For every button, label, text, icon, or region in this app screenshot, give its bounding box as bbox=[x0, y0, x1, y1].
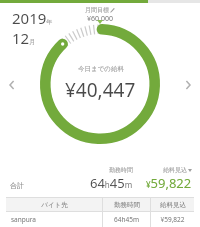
staticText: ¥59,822 bbox=[146, 174, 192, 192]
staticText: 勤務時間 bbox=[114, 201, 140, 209]
staticText: 月間目標 bbox=[85, 6, 109, 14]
staticText: sanpura bbox=[11, 215, 36, 224]
button[interactable]: Next month bbox=[177, 74, 199, 96]
staticText: バイト先 bbox=[41, 201, 68, 209]
staticText: 12月 bbox=[12, 28, 36, 48]
staticText: ¥60,000 bbox=[87, 14, 113, 24]
staticText: ¥59,822 bbox=[160, 215, 185, 224]
button[interactable]: 今日までの給料 bbox=[40, 24, 160, 144]
button[interactable]: 月間目標 bbox=[85, 6, 115, 24]
staticText: 64h45m bbox=[114, 215, 139, 224]
button[interactable]: Previous month bbox=[1, 74, 23, 96]
button[interactable]: 合計 bbox=[10, 166, 192, 192]
staticText: 64h45m bbox=[90, 174, 133, 192]
staticText: 給料見込 bbox=[160, 201, 186, 209]
staticText: 勤務時間 bbox=[109, 166, 133, 174]
staticText: 今日までの給料 bbox=[78, 65, 124, 73]
staticText: 合計 bbox=[10, 181, 24, 190]
button[interactable]: sanpura bbox=[6, 212, 194, 227]
staticText: 給料見込 bbox=[163, 166, 187, 174]
staticText: ¥40,447 bbox=[65, 77, 136, 103]
button[interactable]: 2019年 bbox=[12, 8, 53, 48]
staticText: 2019年 bbox=[12, 8, 53, 28]
